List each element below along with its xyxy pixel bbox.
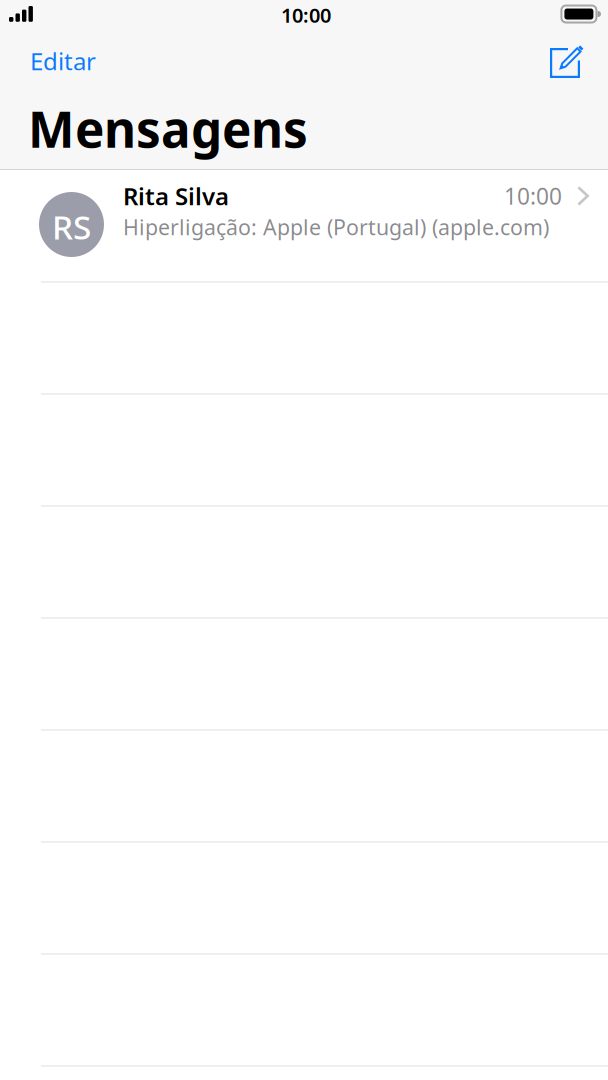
- staticText: Editar: [30, 45, 96, 77]
- staticText: Mensagens: [28, 96, 308, 161]
- staticText: RS: [52, 204, 91, 249]
- staticText: 10:00: [504, 181, 562, 211]
- staticText: 10:00: [281, 2, 331, 28]
- staticText: Rita Silva: [123, 180, 229, 212]
- staticText: Hiperligação: Apple (Portugal) (apple.co…: [123, 213, 549, 241]
- button[interactable]: Compose: [536, 36, 608, 82]
- button[interactable]: Rita Silva, 10:00, Hiperligação: Apple (…: [0, 170, 608, 281]
- button[interactable]: Editar: [0, 36, 110, 82]
